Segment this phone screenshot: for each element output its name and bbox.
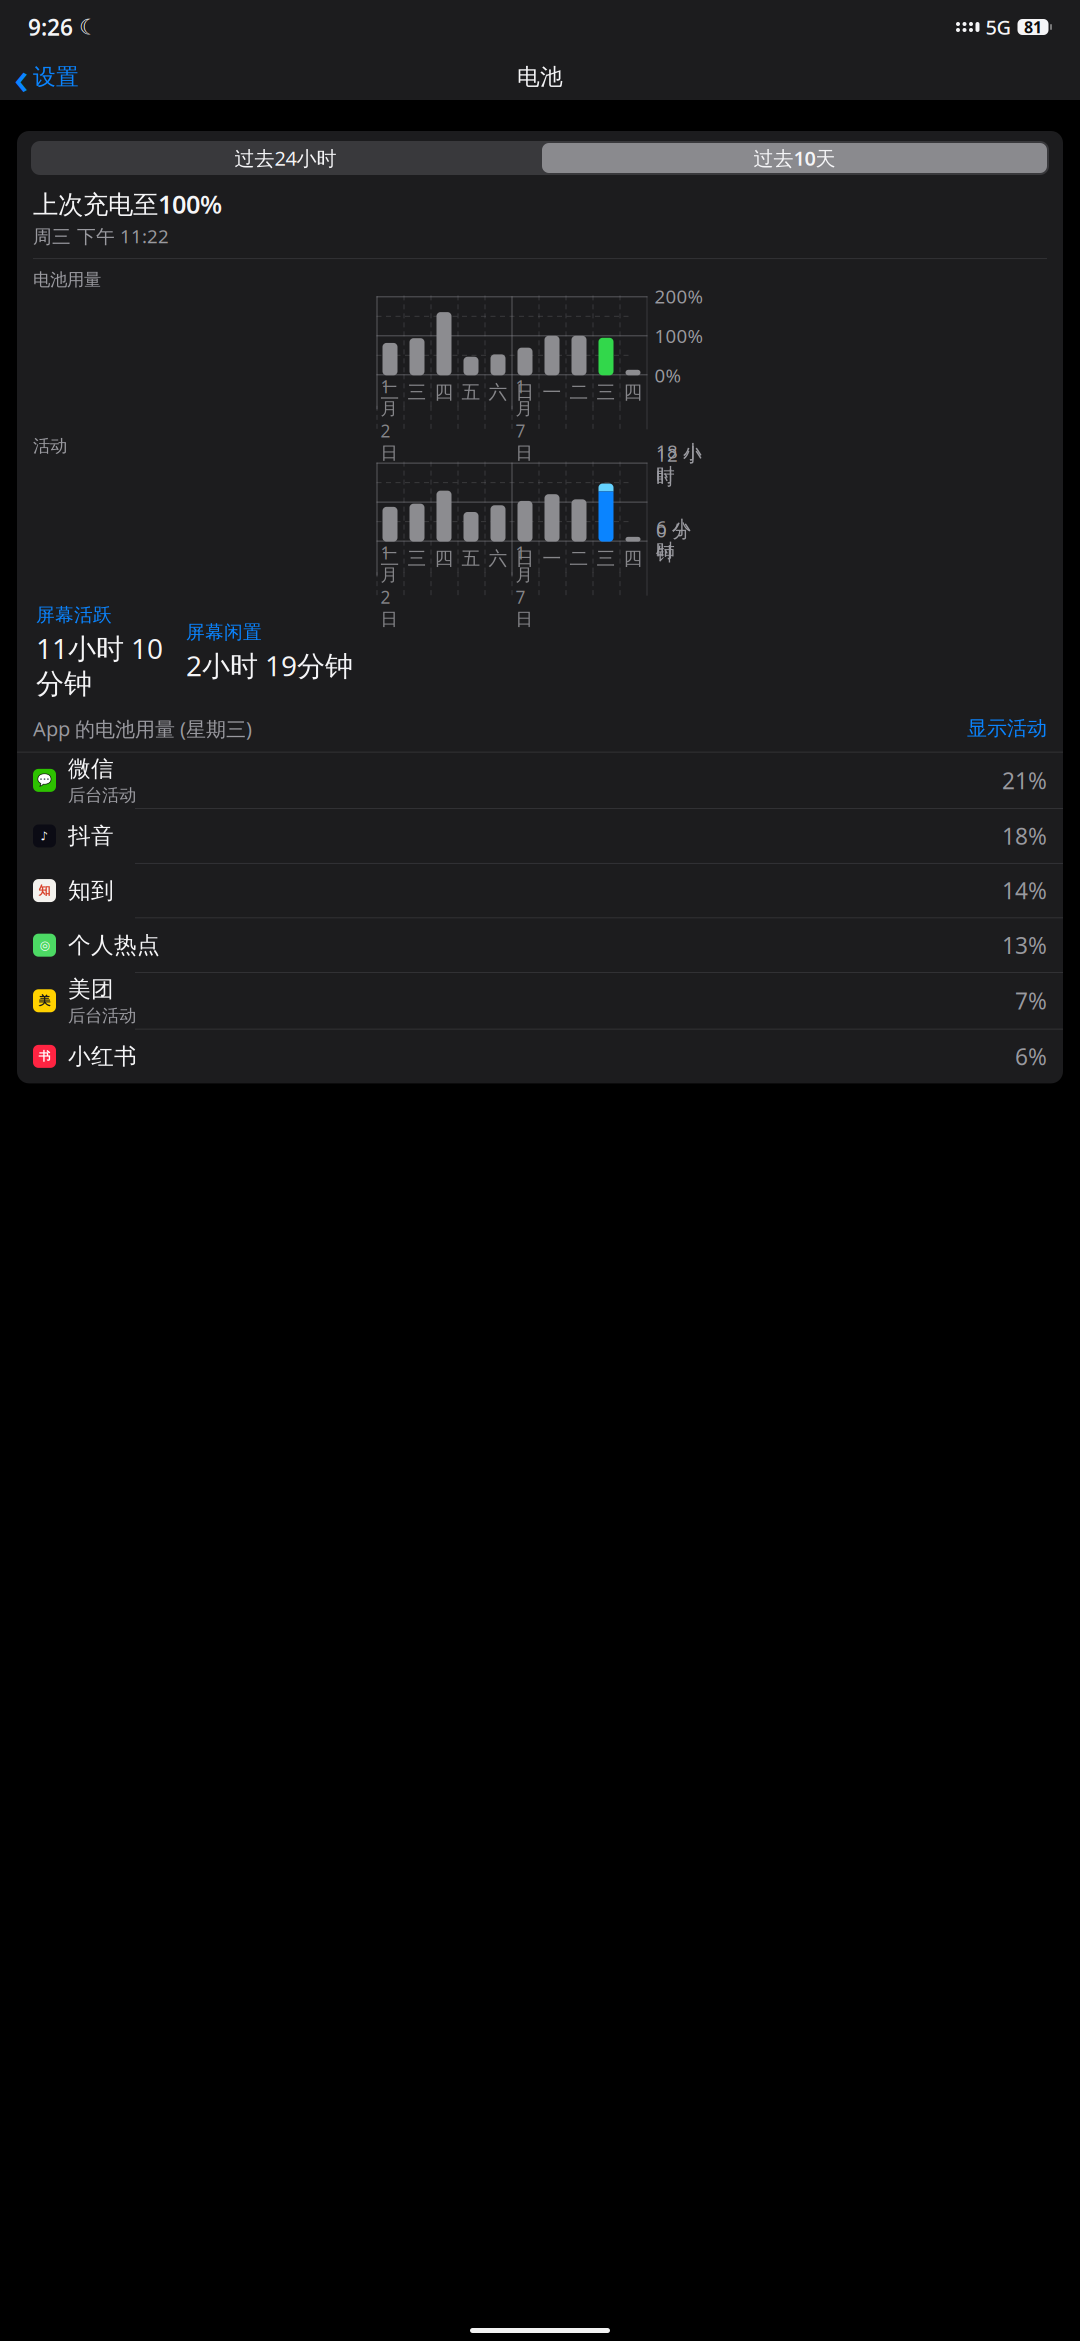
staticText: 三 bbox=[596, 547, 615, 570]
staticText: 显示活动 bbox=[967, 716, 1047, 741]
staticText: 五 bbox=[461, 381, 480, 404]
staticText: 四 bbox=[623, 381, 642, 404]
staticText: 2小时 19分钟 bbox=[186, 647, 353, 684]
button[interactable]: 过去24小时 bbox=[31, 142, 540, 174]
staticText: ☾ bbox=[79, 15, 98, 39]
staticText: 1月7日 bbox=[515, 541, 532, 630]
staticText: 13% bbox=[1002, 930, 1047, 960]
staticText: 设置 bbox=[33, 63, 79, 91]
button[interactable]: ◎ bbox=[17, 918, 1063, 973]
staticText: 11小时 10分钟 bbox=[36, 629, 163, 701]
staticText: 四 bbox=[434, 381, 453, 404]
staticText: 一 bbox=[542, 547, 561, 570]
staticText: 四 bbox=[434, 547, 453, 570]
staticText: 日 bbox=[515, 381, 534, 404]
staticText: 三 bbox=[596, 381, 615, 404]
staticText: 过去24小时 bbox=[234, 145, 336, 171]
staticText: 抖音 bbox=[68, 822, 114, 850]
staticText: 💬 bbox=[37, 773, 52, 787]
staticText: 电池 bbox=[517, 63, 563, 91]
button[interactable]: 知 bbox=[17, 864, 1063, 918]
staticText: App 的电池用量 (星期三) bbox=[33, 715, 252, 742]
staticText: 二 bbox=[569, 381, 588, 404]
staticText: 6% bbox=[1015, 1041, 1047, 1071]
staticText: 一 bbox=[542, 381, 561, 404]
button[interactable]: 💬 bbox=[17, 752, 1063, 809]
staticText: 六 bbox=[488, 381, 507, 404]
staticText: 知 bbox=[38, 883, 50, 898]
staticText: 个人热点 bbox=[68, 931, 160, 959]
staticText: 电池用量 bbox=[33, 269, 101, 290]
staticText: 书 bbox=[38, 1049, 50, 1064]
staticText: ◎ bbox=[39, 938, 49, 952]
staticText: 18% bbox=[1002, 821, 1047, 851]
staticText: 知到 bbox=[68, 877, 114, 904]
staticText: 二 bbox=[380, 381, 399, 404]
staticText: ‹ bbox=[14, 47, 29, 107]
staticText: 0 分钟 bbox=[656, 518, 691, 565]
staticText: 周三 下午 11:22 bbox=[33, 224, 169, 248]
staticText: 美 bbox=[38, 993, 50, 1008]
staticText: 微信 bbox=[68, 755, 114, 783]
staticText: 上次充电至100% bbox=[33, 187, 222, 221]
staticText: 小红书 bbox=[68, 1042, 137, 1070]
staticText: 12 小时 6 小时 bbox=[656, 442, 702, 562]
button[interactable]: 显示活动 bbox=[967, 716, 1047, 741]
staticText: 屏幕活跃 bbox=[36, 604, 112, 626]
staticText: 7% bbox=[1015, 986, 1047, 1016]
staticText: 后台活动 bbox=[68, 1005, 136, 1026]
staticText: 六 bbox=[488, 547, 507, 570]
button[interactable]: 美 bbox=[17, 973, 1063, 1029]
staticText: 9:26 bbox=[28, 12, 73, 42]
staticText: ♪ bbox=[40, 829, 48, 843]
staticText: 日 bbox=[515, 547, 534, 570]
staticText: 1月2日 bbox=[380, 541, 397, 630]
staticText: 1月7日 bbox=[515, 375, 532, 464]
staticText: 活动 bbox=[33, 435, 67, 457]
staticText: 三 bbox=[407, 381, 426, 404]
staticText: 美团 bbox=[68, 975, 114, 1003]
staticText: 二 bbox=[380, 547, 399, 570]
button[interactable]: 过去10天 bbox=[540, 141, 1049, 175]
button[interactable]: ♪ bbox=[17, 809, 1063, 864]
staticText: 二 bbox=[569, 547, 588, 570]
staticText: 1月2日 bbox=[380, 375, 397, 464]
staticText: 5G bbox=[985, 14, 1011, 40]
staticText: 21% bbox=[1002, 765, 1047, 795]
staticText: 0% bbox=[654, 363, 681, 388]
button[interactable]: ‹ bbox=[6, 45, 87, 109]
staticText: 过去10天 bbox=[753, 145, 835, 171]
staticText: 四 bbox=[623, 547, 642, 570]
staticText: 18 小时 bbox=[656, 439, 702, 486]
staticText: 三 bbox=[407, 547, 426, 570]
staticText: 五 bbox=[461, 547, 480, 570]
staticText: 100% bbox=[654, 323, 703, 348]
staticText: 14% bbox=[1002, 875, 1047, 906]
staticText: 屏幕闲置 bbox=[186, 621, 262, 644]
button[interactable]: 书 bbox=[17, 1029, 1063, 1083]
staticText: 200% bbox=[654, 284, 703, 309]
staticText: 81 bbox=[1024, 16, 1042, 38]
staticText: 后台活动 bbox=[68, 785, 136, 806]
